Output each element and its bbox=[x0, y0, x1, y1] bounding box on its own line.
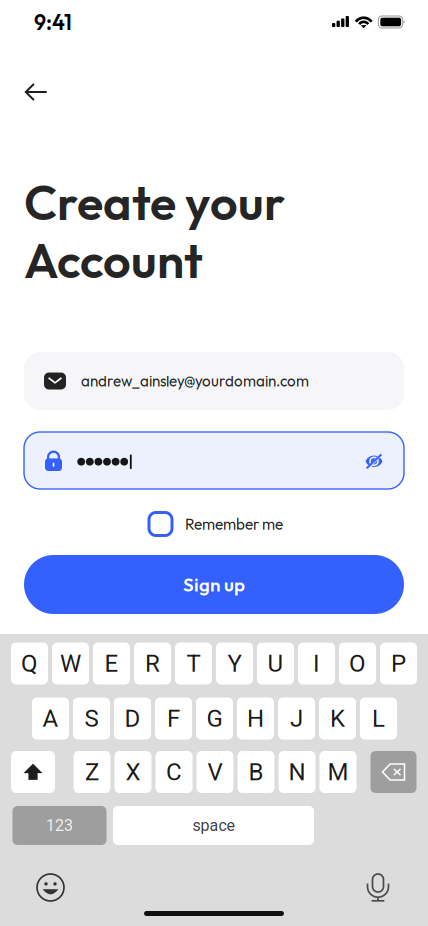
button[interactable]: Sign up bbox=[24, 555, 404, 614]
staticText: O bbox=[349, 649, 366, 677]
staticText: A bbox=[42, 704, 58, 732]
staticText: L bbox=[372, 704, 385, 732]
staticText: J bbox=[290, 704, 303, 732]
staticText: B bbox=[248, 758, 263, 786]
staticText: C bbox=[166, 758, 182, 786]
button[interactable]: F bbox=[155, 697, 192, 739]
staticText: 123 bbox=[46, 816, 73, 835]
button[interactable]: Show password bbox=[365, 453, 383, 469]
button[interactable]: J bbox=[278, 697, 315, 739]
button[interactable]: Voice input bbox=[367, 874, 389, 902]
button[interactable]: H bbox=[237, 697, 274, 739]
button[interactable]: G bbox=[196, 697, 233, 739]
staticText: space bbox=[192, 816, 234, 835]
staticText: 9:41 bbox=[34, 9, 72, 35]
button[interactable]: X bbox=[114, 751, 151, 793]
button[interactable]: O bbox=[339, 642, 376, 684]
button[interactable]: Back bbox=[13, 69, 59, 115]
staticText: D bbox=[124, 704, 140, 732]
button[interactable]: D bbox=[114, 697, 151, 739]
button[interactable]: P bbox=[380, 642, 417, 684]
staticText: Sign up bbox=[183, 573, 245, 596]
button[interactable]: Backspace bbox=[370, 751, 416, 793]
staticText: Y bbox=[227, 649, 241, 677]
staticText: P bbox=[391, 649, 406, 677]
staticText: Remember me bbox=[185, 514, 283, 534]
button[interactable]: U bbox=[257, 642, 294, 684]
staticText: G bbox=[206, 704, 222, 732]
staticText: T bbox=[186, 649, 200, 677]
button[interactable]: S bbox=[73, 697, 110, 739]
button[interactable]: B bbox=[237, 751, 274, 793]
button[interactable]: Remember me bbox=[149, 512, 309, 535]
button[interactable]: T bbox=[175, 642, 212, 684]
staticText: W bbox=[60, 649, 81, 677]
staticText: Z bbox=[85, 758, 99, 786]
staticText: Account bbox=[24, 229, 203, 291]
button[interactable]: Y bbox=[216, 642, 253, 684]
staticText: Q bbox=[21, 649, 38, 677]
button[interactable]: Z bbox=[73, 751, 110, 793]
button[interactable]: Emoji keyboard bbox=[37, 874, 64, 901]
staticText: X bbox=[125, 758, 140, 786]
staticText: E bbox=[104, 649, 118, 677]
staticText: S bbox=[84, 704, 98, 732]
staticText: I bbox=[313, 649, 320, 677]
button[interactable]: E bbox=[93, 642, 130, 684]
button[interactable]: C bbox=[155, 751, 192, 793]
button[interactable]: R bbox=[134, 642, 171, 684]
button[interactable]: A bbox=[32, 697, 69, 739]
button[interactable]: Q bbox=[11, 642, 48, 684]
button[interactable]: M bbox=[319, 751, 356, 793]
button[interactable]: V bbox=[196, 751, 233, 793]
button[interactable]: I bbox=[298, 642, 335, 684]
staticText: andrew_ainsley@yourdomain.com bbox=[81, 371, 309, 391]
button[interactable]: 123 bbox=[12, 806, 106, 845]
staticText: F bbox=[167, 704, 180, 732]
button[interactable]: space bbox=[113, 806, 314, 845]
staticText: H bbox=[247, 704, 264, 732]
button[interactable]: Shift bbox=[11, 751, 55, 793]
staticText: M bbox=[327, 758, 348, 786]
staticText: Create your bbox=[24, 171, 285, 233]
staticText: R bbox=[145, 649, 160, 677]
staticText: N bbox=[288, 758, 305, 786]
staticText: K bbox=[330, 704, 345, 732]
staticText: V bbox=[207, 758, 222, 786]
button[interactable]: W bbox=[52, 642, 89, 684]
button[interactable]: L bbox=[360, 697, 397, 739]
staticText: U bbox=[267, 649, 283, 677]
button[interactable]: K bbox=[319, 697, 356, 739]
button[interactable]: N bbox=[278, 751, 315, 793]
